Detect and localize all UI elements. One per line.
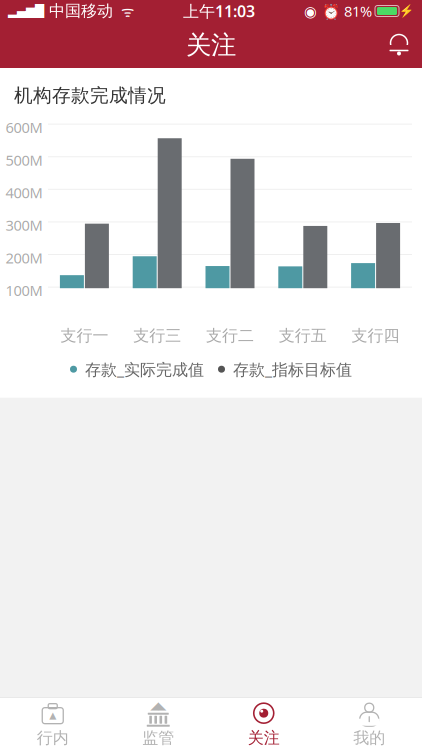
staticText: ◉ ⏰ 81% [304, 1, 372, 21]
staticText: 存款_指标目标值 [233, 359, 352, 380]
staticText: 200M [5, 248, 42, 267]
staticText: 中国移动 [44, 1, 113, 21]
staticText: 关注 [186, 29, 236, 60]
staticText: ▲ [49, 710, 56, 720]
staticText: 500M [5, 150, 42, 170]
staticText: 监管 [142, 728, 174, 748]
button[interactable]: ◢◣ [105, 694, 211, 750]
staticText: ⚡ [399, 4, 414, 18]
staticText: 400M [5, 183, 42, 202]
staticText: 支行一 [60, 326, 108, 346]
staticText: 我的 [353, 728, 385, 748]
staticText: ▂▄▆█ [8, 4, 44, 18]
staticText: 支行五 [279, 326, 327, 346]
staticText: 支行二 [206, 326, 254, 346]
button[interactable]: ▲ [0, 694, 105, 750]
staticText: 支行四 [352, 326, 400, 346]
staticText: 上午11:03 [183, 0, 255, 22]
staticText: 行内 [37, 728, 69, 748]
staticText: ᯤ [113, 1, 134, 21]
staticText: 存款_实际完成值 [85, 359, 204, 380]
staticText: 关注 [248, 728, 280, 748]
staticText: 300M [5, 215, 42, 235]
staticText: 机构存款完成情况 [14, 84, 166, 107]
staticText: 支行三 [133, 326, 181, 346]
staticText: 600M [5, 118, 42, 137]
button[interactable]: Notifications [376, 32, 422, 58]
button[interactable]: 我的 [316, 694, 422, 750]
staticText: ◢◣ [150, 700, 166, 712]
button[interactable]: 关注 [211, 694, 316, 750]
staticText: 100M [5, 281, 42, 300]
